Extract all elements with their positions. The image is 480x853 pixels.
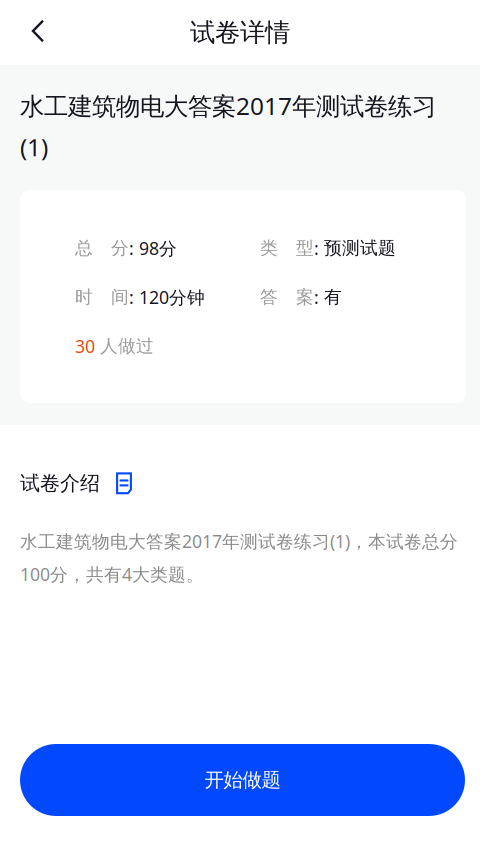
staticText: 人做过 <box>95 335 154 357</box>
staticText: 试卷详情 <box>190 17 290 48</box>
staticText: 答 案 <box>260 286 314 308</box>
button[interactable]: 开始做题 <box>20 744 465 816</box>
staticText: 试卷介绍 <box>20 471 100 496</box>
staticText: 30 <box>75 334 95 358</box>
staticText: 预测试题 <box>324 237 396 259</box>
staticText: : <box>129 236 139 260</box>
staticText: 98分 <box>139 236 177 260</box>
staticText: 水工建筑物电大答案2017年测试卷练习(1) <box>20 89 436 163</box>
staticText: 120分钟 <box>139 285 205 309</box>
staticText: 总 分 <box>75 237 129 259</box>
staticText: 类 型 <box>260 237 314 259</box>
staticText: : <box>314 285 324 309</box>
staticText: 水工建筑物电大答案2017年测试卷练习(1)，本试卷总分100分，共有4大类题。 <box>20 529 458 586</box>
staticText: 开始做题 <box>204 768 280 792</box>
staticText: 时 间 <box>75 286 129 308</box>
staticText: 有 <box>324 286 342 308</box>
staticText: : <box>314 236 324 260</box>
staticText: : <box>129 285 139 309</box>
button[interactable]: Back <box>16 9 60 53</box>
